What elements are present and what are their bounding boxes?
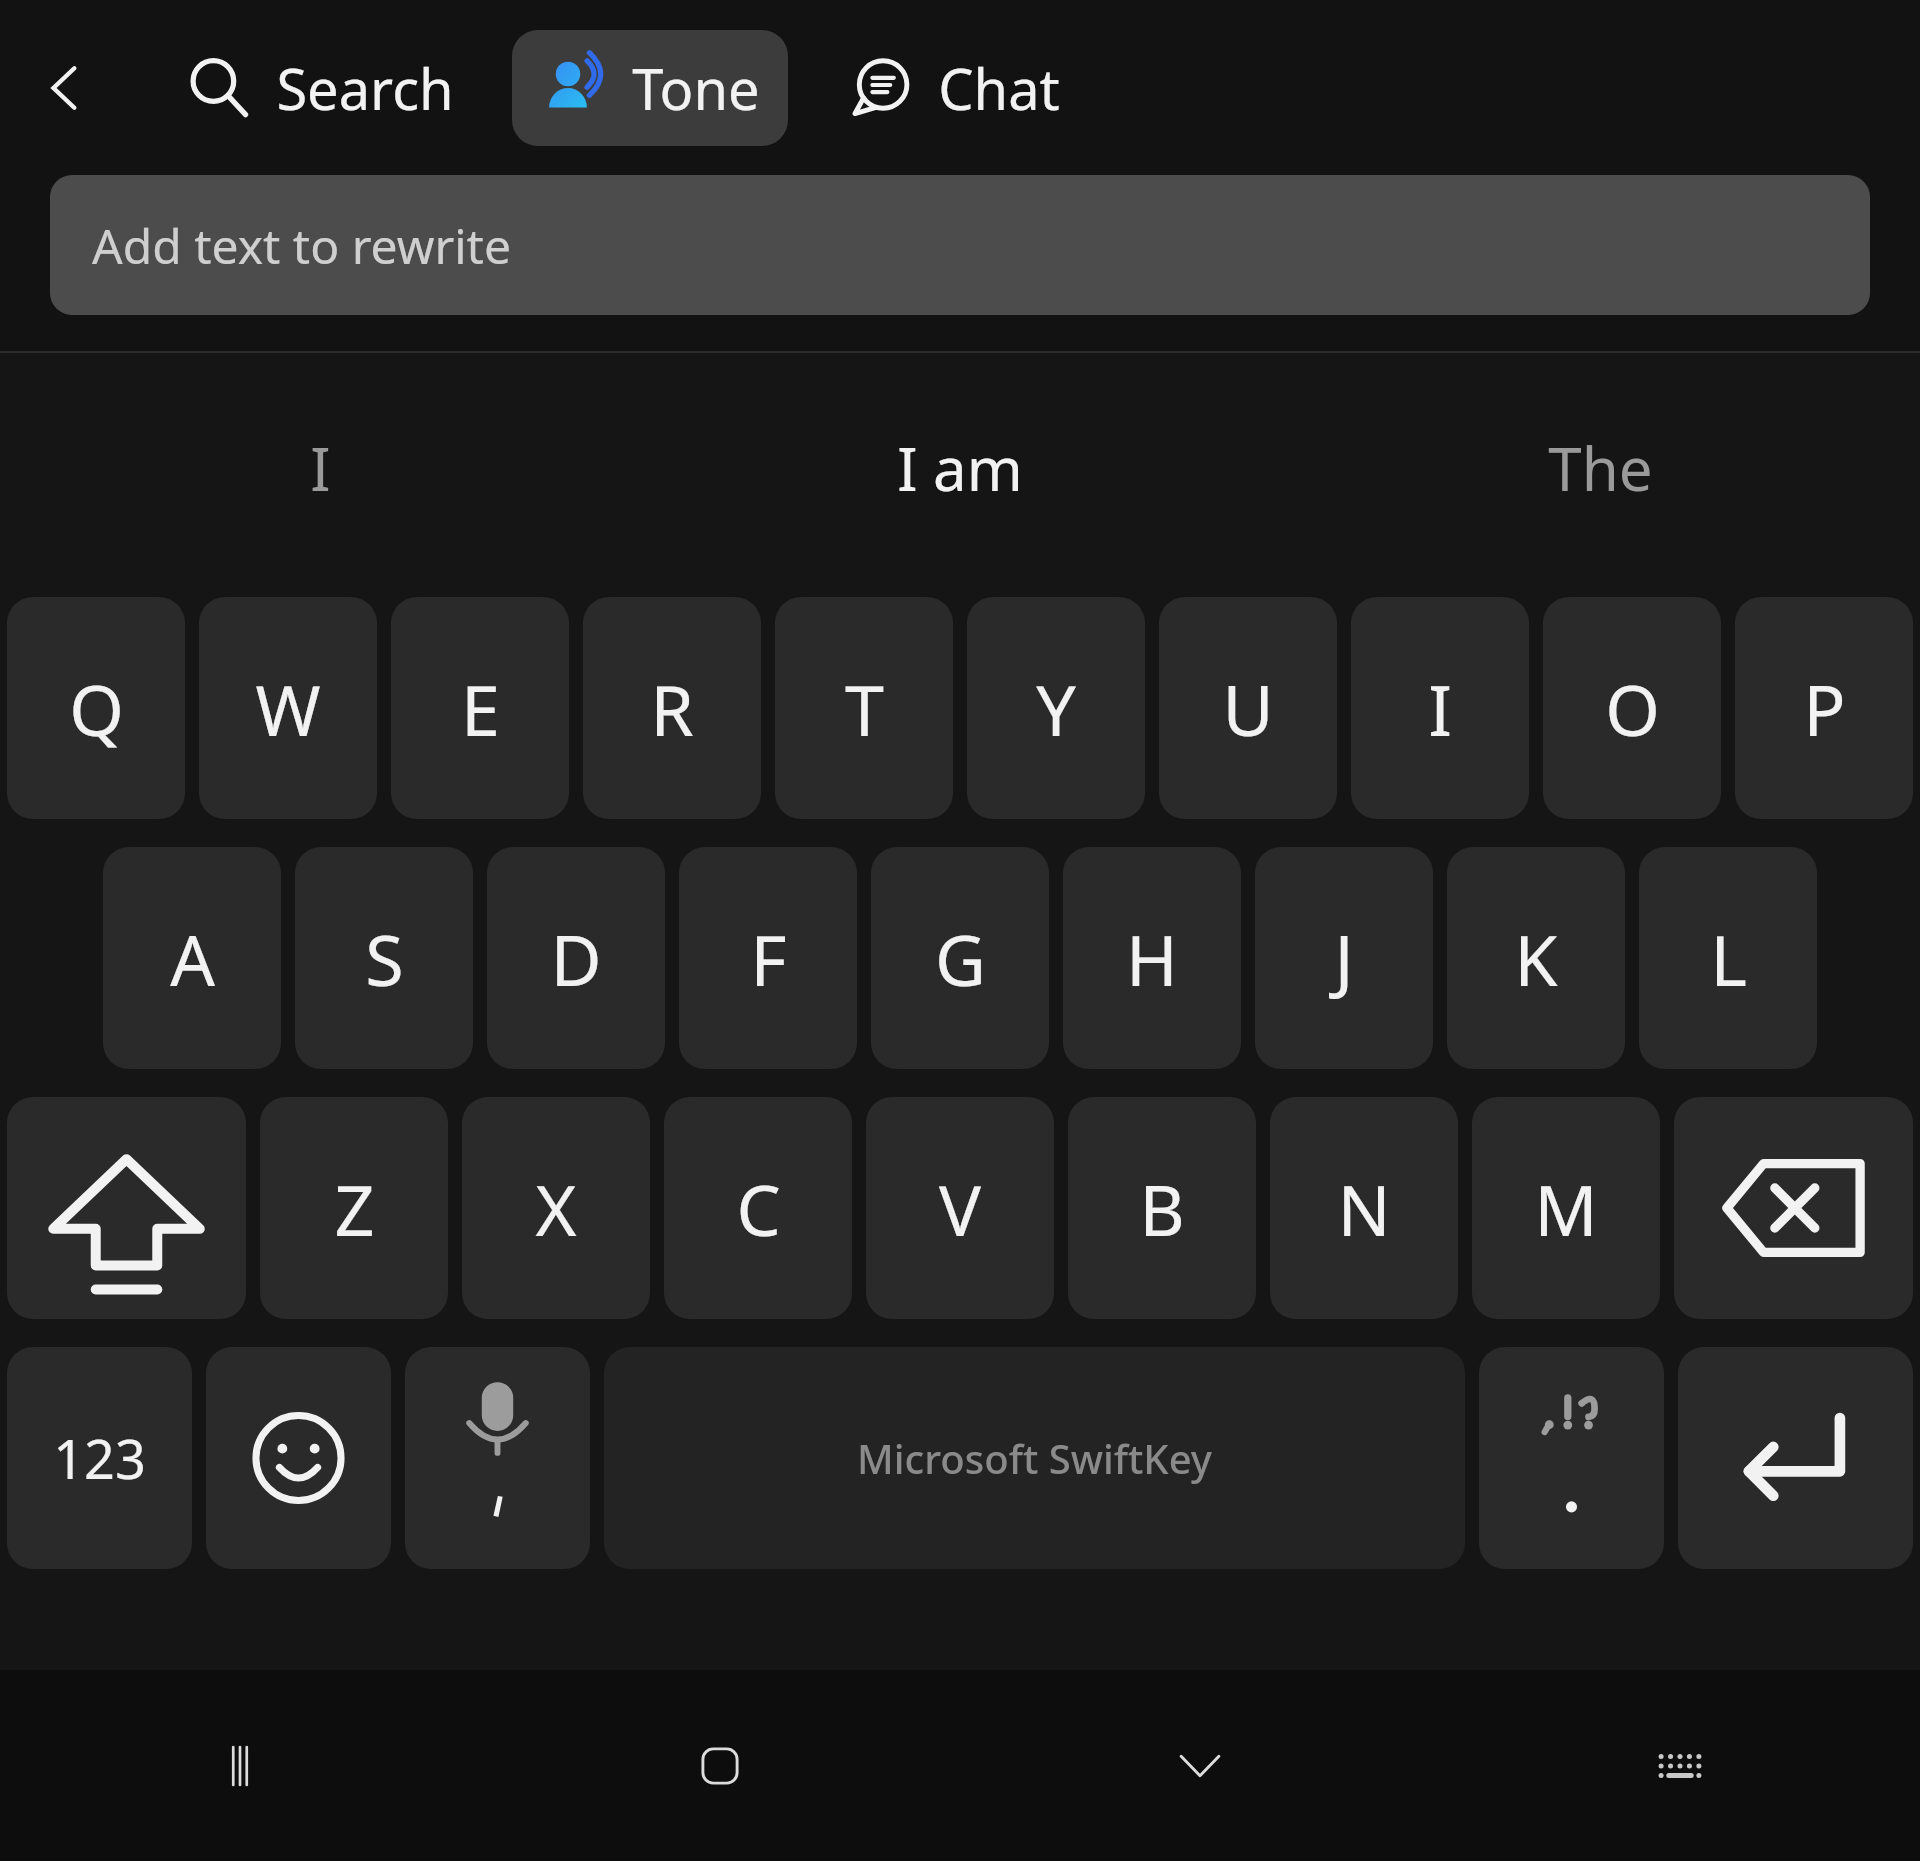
staticText: Search	[276, 50, 454, 126]
button[interactable]: A	[103, 847, 281, 1069]
button[interactable]: V	[866, 1097, 1054, 1319]
button[interactable]: T	[775, 597, 953, 819]
button[interactable]: Recents	[0, 1670, 480, 1861]
button[interactable]: Space	[604, 1347, 1465, 1569]
staticText: Chat	[938, 50, 1060, 126]
button[interactable]: 123	[7, 1347, 192, 1569]
button[interactable]: Search	[156, 30, 482, 146]
button[interactable]: Voice input	[405, 1347, 590, 1569]
staticText: H	[1126, 911, 1178, 1006]
staticText: A	[170, 911, 215, 1006]
button[interactable]: I am	[640, 353, 1280, 583]
button[interactable]: D	[487, 847, 665, 1069]
button[interactable]: P	[1735, 597, 1913, 819]
button[interactable]: Tone	[512, 30, 788, 146]
button[interactable]: H	[1063, 847, 1241, 1069]
button[interactable]: Chat	[818, 30, 1088, 146]
staticText: J	[1334, 911, 1354, 1006]
staticText: F	[750, 911, 787, 1006]
button[interactable]: Y	[967, 597, 1145, 819]
staticText: R	[650, 661, 694, 756]
button[interactable]: Q	[7, 597, 185, 819]
button[interactable]	[1479, 1347, 1664, 1569]
staticText: The	[1548, 427, 1653, 509]
staticText: P	[1803, 661, 1846, 756]
staticText: B	[1139, 1161, 1185, 1256]
staticText: Add text to rewrite	[92, 213, 511, 278]
button[interactable]: B	[1068, 1097, 1256, 1319]
staticText: I am	[897, 427, 1023, 509]
button[interactable]: Add text to rewrite	[50, 175, 1870, 315]
button[interactable]: W	[199, 597, 377, 819]
staticText: Q	[69, 661, 124, 756]
button[interactable]: I	[0, 353, 640, 583]
button[interactable]: Shift	[7, 1097, 246, 1319]
staticText: U	[1222, 661, 1274, 756]
button[interactable]: Backspace	[1674, 1097, 1913, 1319]
button[interactable]: The	[1280, 353, 1920, 583]
button[interactable]: X	[462, 1097, 650, 1319]
button[interactable]: N	[1270, 1097, 1458, 1319]
button[interactable]: M	[1472, 1097, 1660, 1319]
staticText: Y	[1036, 661, 1076, 756]
button[interactable]: U	[1159, 597, 1337, 819]
staticText: K	[1514, 911, 1558, 1006]
staticText: Microsoft SwiftKey	[857, 1431, 1212, 1485]
button[interactable]: F	[679, 847, 857, 1069]
button[interactable]: Emoji	[206, 1347, 391, 1569]
staticText: Z	[334, 1161, 375, 1256]
staticText: T	[845, 661, 884, 756]
staticText: Tone	[632, 50, 760, 126]
button[interactable]: Enter	[1678, 1347, 1913, 1569]
staticText: I	[1428, 661, 1452, 756]
staticText: O	[1605, 661, 1660, 756]
button[interactable]: Switch keyboard	[1440, 1670, 1920, 1861]
button[interactable]: S	[295, 847, 473, 1069]
button[interactable]: G	[871, 847, 1049, 1069]
button[interactable]: K	[1447, 847, 1625, 1069]
staticText: M	[1534, 1161, 1598, 1256]
button[interactable]: Hide keyboard	[960, 1670, 1440, 1861]
staticText: E	[461, 661, 500, 756]
staticText: G	[935, 911, 986, 1006]
staticText: C	[736, 1161, 781, 1256]
button[interactable]: J	[1255, 847, 1433, 1069]
staticText: L	[1710, 911, 1747, 1006]
staticText: W	[255, 661, 321, 756]
staticText: D	[550, 911, 602, 1006]
button[interactable]: Z	[260, 1097, 448, 1319]
button[interactable]: E	[391, 597, 569, 819]
button[interactable]: L	[1639, 847, 1817, 1069]
staticText: X	[535, 1161, 577, 1256]
staticText: S	[365, 911, 404, 1006]
staticText: I	[310, 427, 331, 509]
button[interactable]: Home	[480, 1670, 960, 1861]
button[interactable]: Back	[10, 32, 122, 144]
staticText: V	[939, 1161, 981, 1256]
staticText: N	[1337, 1161, 1391, 1256]
staticText: 123	[53, 1421, 146, 1495]
button[interactable]: R	[583, 597, 761, 819]
button[interactable]: C	[664, 1097, 852, 1319]
button[interactable]: O	[1543, 597, 1721, 819]
button[interactable]: I	[1351, 597, 1529, 819]
